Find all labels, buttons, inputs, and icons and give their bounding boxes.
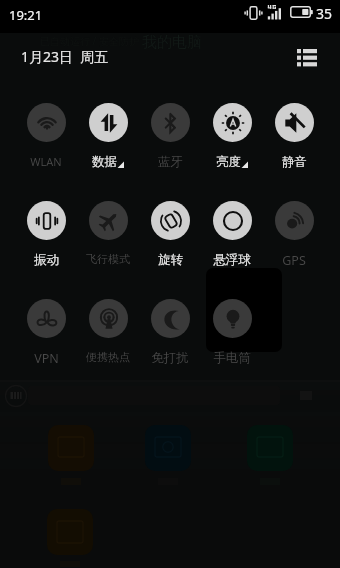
button[interactable]: 亮度 <box>201 98 263 170</box>
button[interactable]: 振动 <box>15 196 77 268</box>
button[interactable]: 飞行模式 <box>77 196 139 266</box>
button[interactable]: 免打扰 <box>139 294 201 366</box>
staticText: 便携热点 <box>86 350 130 364</box>
staticText: 数据 <box>92 154 117 170</box>
staticText: 19:21 <box>9 6 43 24</box>
button[interactable]: 悬浮球 <box>201 196 263 268</box>
button[interactable]: GPS <box>263 196 325 269</box>
staticText: 旋转 <box>158 252 183 268</box>
staticText: 亮度 <box>216 154 241 170</box>
staticText: 静音 <box>282 154 307 170</box>
button[interactable]: 便携热点 <box>77 294 139 364</box>
button[interactable]: 旋转 <box>139 196 201 268</box>
staticText: 飞行模式 <box>86 252 130 266</box>
staticText: 手电筒 <box>213 350 251 366</box>
button[interactable]: 手电筒 <box>201 294 263 366</box>
staticText: 振动 <box>34 252 59 268</box>
button[interactable]: WLAN <box>15 98 77 169</box>
button[interactable]: 静音 <box>263 98 325 170</box>
staticText: 悬浮球 <box>213 252 251 268</box>
staticText: 我的电脑 <box>142 33 202 52</box>
staticText: 1月23日 周五 <box>21 47 109 66</box>
staticText: VPN <box>34 350 59 367</box>
button[interactable]: VPN <box>15 294 77 367</box>
button[interactable]: Quick settings list <box>293 44 321 72</box>
staticText: WLAN <box>30 154 62 169</box>
button[interactable]: 蓝牙 <box>139 98 201 170</box>
button[interactable]: 数据 <box>77 98 139 170</box>
staticText: 35 <box>316 4 333 23</box>
staticText: GPS <box>282 252 306 269</box>
staticText: 蓝牙 <box>158 154 183 170</box>
staticText: 免打扰 <box>151 350 189 366</box>
